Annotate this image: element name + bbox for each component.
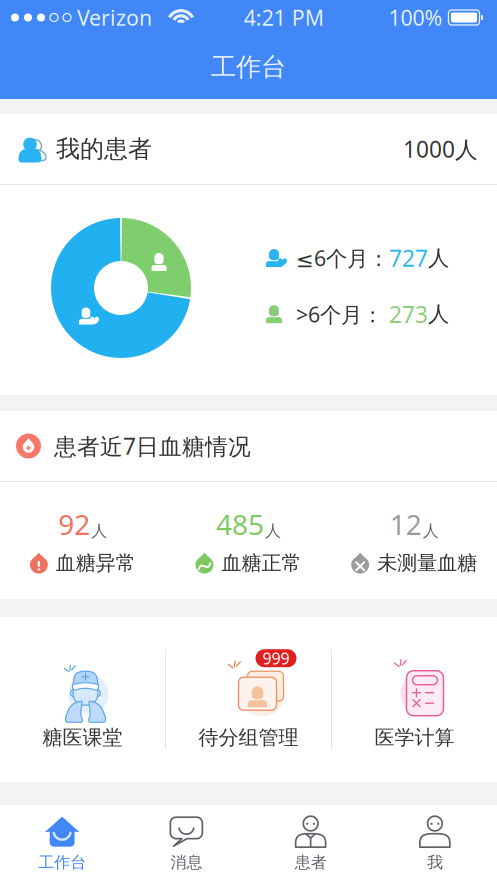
staticText: 92	[58, 506, 90, 543]
button[interactable]: 患者	[248, 816, 373, 872]
staticText: 12	[390, 506, 422, 543]
staticText: 工作台	[38, 853, 86, 872]
staticText: Verizon	[77, 3, 152, 32]
staticText: 未测量血糖	[377, 551, 477, 575]
button[interactable]: 我的患者	[0, 114, 497, 184]
staticText: 工作台	[211, 51, 286, 82]
staticText: >6个月：	[296, 300, 383, 328]
staticText: 人	[91, 521, 107, 541]
button[interactable]: 999	[166, 649, 331, 750]
staticText: 人	[428, 301, 449, 327]
staticText: 727	[389, 243, 428, 273]
button[interactable]: 医学计算	[332, 649, 497, 750]
staticText: 患者	[295, 853, 327, 872]
staticText: 消息	[170, 853, 202, 872]
button[interactable]: 工作台	[0, 816, 124, 872]
staticText: 人	[265, 521, 281, 541]
button[interactable]: 糖医课堂	[0, 649, 165, 750]
button[interactable]: 我	[373, 816, 497, 872]
staticText: ≤6个月：	[296, 244, 389, 272]
staticText: 医学计算	[374, 725, 454, 750]
staticText: 1000人	[403, 134, 478, 164]
staticText: 人	[428, 245, 449, 271]
staticText: 糖医课堂	[42, 725, 122, 750]
staticText: 血糖正常	[221, 551, 301, 575]
staticText: 100%	[388, 3, 442, 32]
staticText: 人	[423, 521, 439, 541]
staticText: 4:21 PM	[244, 3, 324, 32]
staticText: 我的患者	[56, 134, 152, 164]
staticText: 待分组管理	[198, 725, 298, 750]
staticText: 273	[383, 299, 428, 329]
staticText: 血糖异常	[56, 551, 136, 575]
staticText: 我	[427, 853, 443, 872]
staticText: 485	[216, 506, 264, 543]
staticText: 999	[262, 648, 289, 669]
staticText: 患者近7日血糖情况	[54, 431, 251, 461]
button[interactable]: 消息	[124, 816, 248, 872]
